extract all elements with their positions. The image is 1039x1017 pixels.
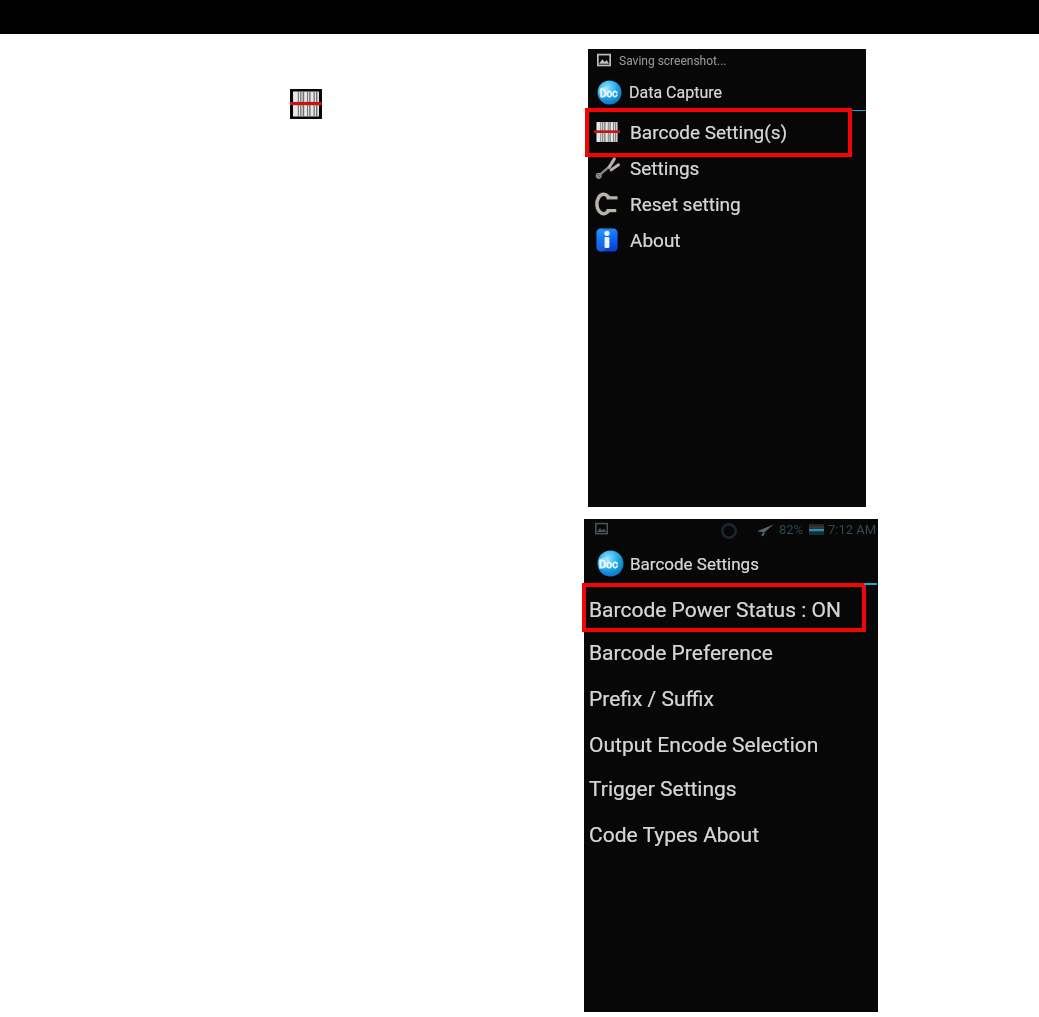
other: Barcode settings app icon xyxy=(290,89,322,119)
staticText: Data Capture xyxy=(629,83,723,102)
staticText: Output Encode Selection xyxy=(589,733,819,758)
staticText: Trigger Settings xyxy=(589,777,737,802)
button[interactable]: Prefix / Suffix xyxy=(584,677,878,721)
button[interactable]: Output Encode Selection xyxy=(584,723,878,767)
staticText: Doc xyxy=(599,558,618,571)
staticText: Code Types About xyxy=(589,823,760,848)
staticText: Barcode Settings xyxy=(630,554,759,574)
staticText: Barcode Setting(s) xyxy=(630,121,788,143)
staticText: Doc xyxy=(600,88,618,100)
button[interactable]: Trigger Settings xyxy=(584,767,878,811)
staticText: Prefix / Suffix xyxy=(589,687,714,712)
button[interactable]: Barcode Power Status : ON xyxy=(584,588,878,632)
button[interactable]: Reset setting xyxy=(588,187,866,221)
staticText: 82% xyxy=(779,522,804,537)
staticText: Saving screenshot... xyxy=(619,54,727,68)
button[interactable]: Code Types About xyxy=(584,813,878,857)
button[interactable]: Barcode Setting(s) xyxy=(588,115,866,149)
button[interactable]: Doc xyxy=(597,550,759,577)
staticText: Barcode Preference xyxy=(589,641,773,666)
button[interactable]: About xyxy=(588,223,866,257)
button[interactable]: Doc xyxy=(597,80,723,105)
staticText: Reset setting xyxy=(630,193,741,215)
staticText: Settings xyxy=(630,157,700,179)
staticText: About xyxy=(630,229,681,251)
button[interactable]: Settings xyxy=(588,151,866,185)
staticText: Barcode Power Status : ON xyxy=(589,598,841,623)
staticText: 7:12 AM xyxy=(828,522,877,537)
button[interactable]: Barcode Preference xyxy=(584,631,878,675)
